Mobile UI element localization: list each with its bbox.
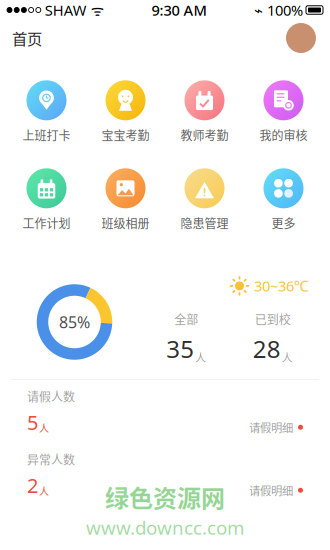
staticText: 请假明细 — [249, 419, 293, 435]
staticText: 我的审核 — [259, 126, 307, 144]
button[interactable]: 我的审核 — [244, 83, 323, 141]
button[interactable]: 班级相册 — [86, 171, 165, 229]
staticText: 30~36℃ — [254, 276, 309, 296]
staticText: 异常人数 — [27, 450, 75, 468]
staticText: 2 — [27, 472, 38, 498]
button[interactable]: 教师考勤 — [165, 83, 244, 141]
staticText: 5 — [27, 409, 38, 435]
staticText: 85% — [59, 311, 90, 333]
staticText: 人 — [195, 349, 206, 365]
staticText: 班级相册 — [101, 214, 149, 232]
staticText: 教师考勤 — [180, 126, 228, 144]
staticText: 工作计划 — [22, 214, 70, 232]
staticText: 请假人数 — [27, 387, 75, 405]
button[interactable]: Profile — [286, 23, 316, 53]
staticText: 宝宝考勤 — [101, 126, 149, 144]
staticText: 首页 — [12, 27, 42, 49]
button[interactable]: 上班打卡 — [7, 83, 86, 141]
staticText: 人 — [39, 484, 49, 498]
button[interactable]: 请假明细 — [249, 419, 303, 435]
staticText: 9:30 AM — [151, 0, 206, 20]
staticText: 全部 — [174, 310, 198, 328]
staticText: ⌁ 100% — [254, 0, 303, 20]
staticText: 35 — [166, 333, 194, 365]
staticText: 已到校 — [255, 310, 291, 328]
staticText: 更多 — [271, 214, 295, 232]
staticText: 请假明细 — [249, 482, 293, 498]
button[interactable]: 工作计划 — [7, 171, 86, 229]
button[interactable]: 请假明细 — [249, 482, 303, 498]
staticText: SHAW ᯤ — [41, 0, 104, 20]
staticText: 28 — [253, 333, 281, 365]
staticText: 人 — [282, 349, 293, 365]
staticText: www.downcc.com — [86, 515, 244, 540]
staticText: 上班打卡 — [22, 126, 70, 144]
staticText: 隐患管理 — [180, 214, 228, 232]
staticText: 人 — [39, 421, 49, 435]
staticText: 绿色资源网 — [105, 479, 225, 514]
button[interactable]: 宝宝考勤 — [86, 83, 165, 141]
button[interactable]: 隐患管理 — [165, 171, 244, 229]
button[interactable]: 更多 — [244, 171, 323, 229]
